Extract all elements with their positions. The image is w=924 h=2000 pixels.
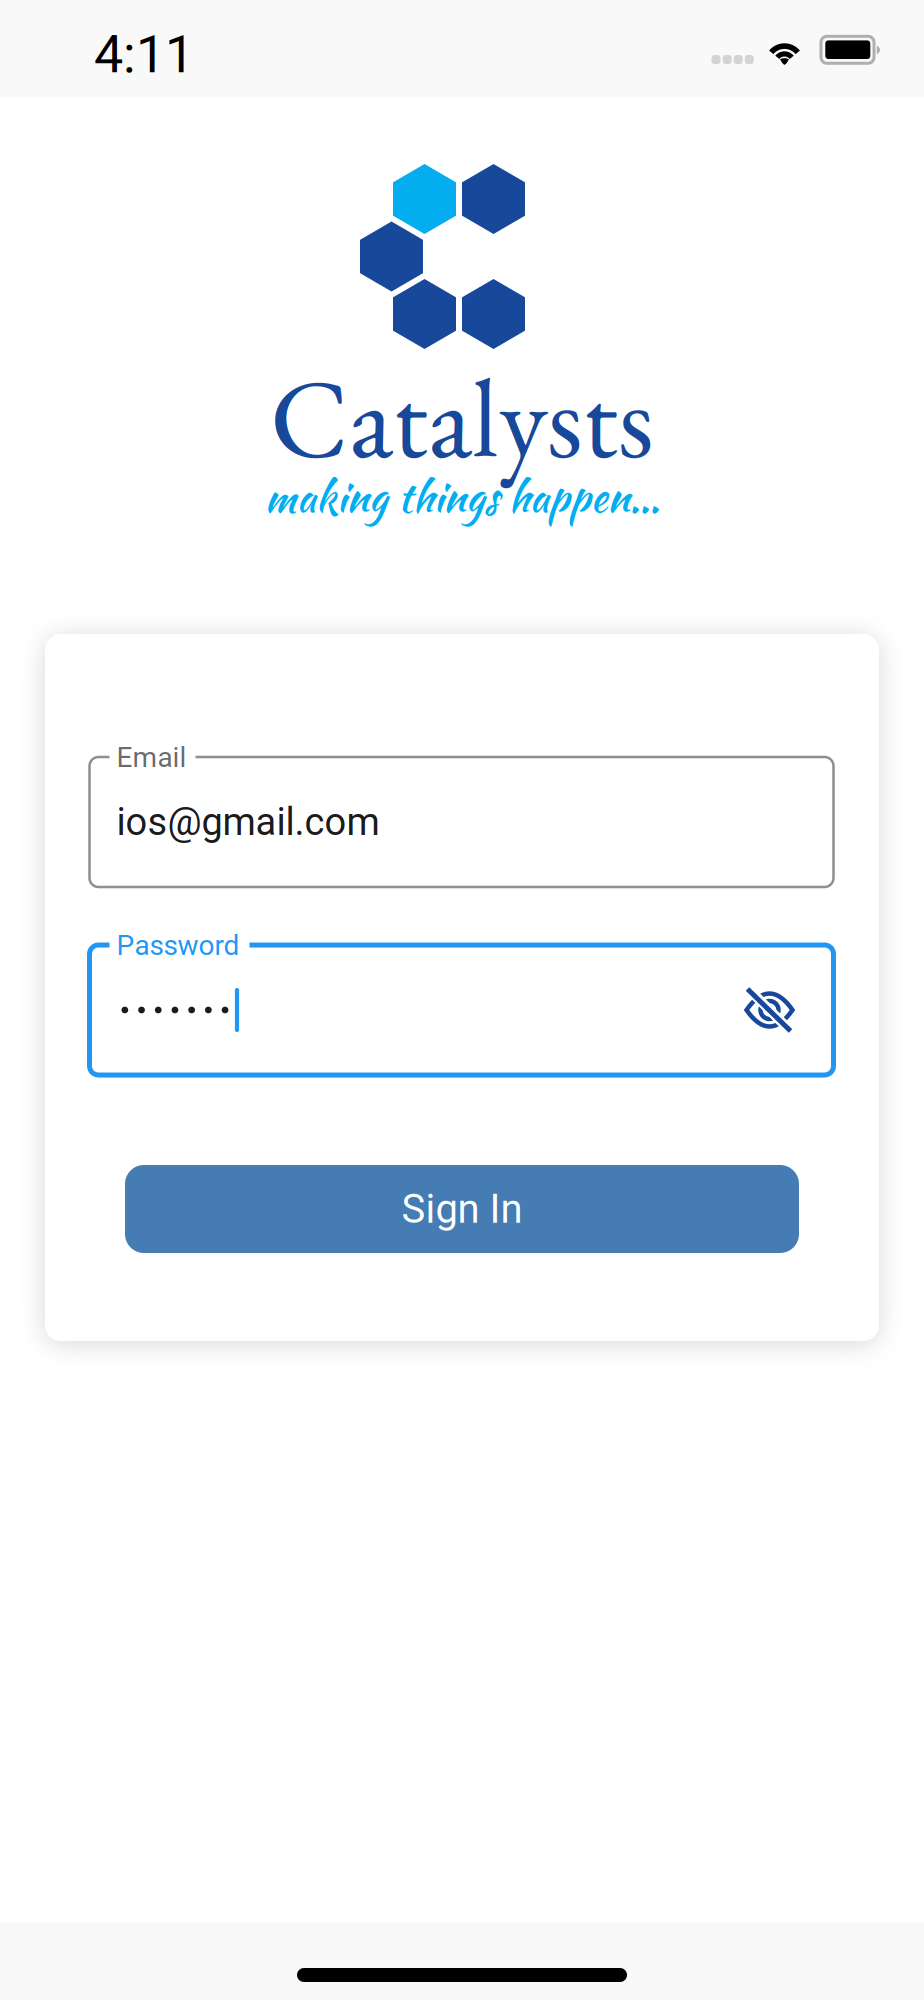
staticText: Sign In <box>401 1186 522 1232</box>
button[interactable]: Show password <box>705 948 833 1072</box>
staticText: 4:11 <box>94 24 194 85</box>
staticText: Catalysts <box>270 345 654 489</box>
staticText: Email <box>116 741 186 774</box>
staticText: ios@gmail.com <box>116 800 379 844</box>
staticText: making things happen... <box>264 467 659 527</box>
button[interactable]: Sign In <box>125 1165 799 1253</box>
staticText: Password <box>116 929 239 962</box>
